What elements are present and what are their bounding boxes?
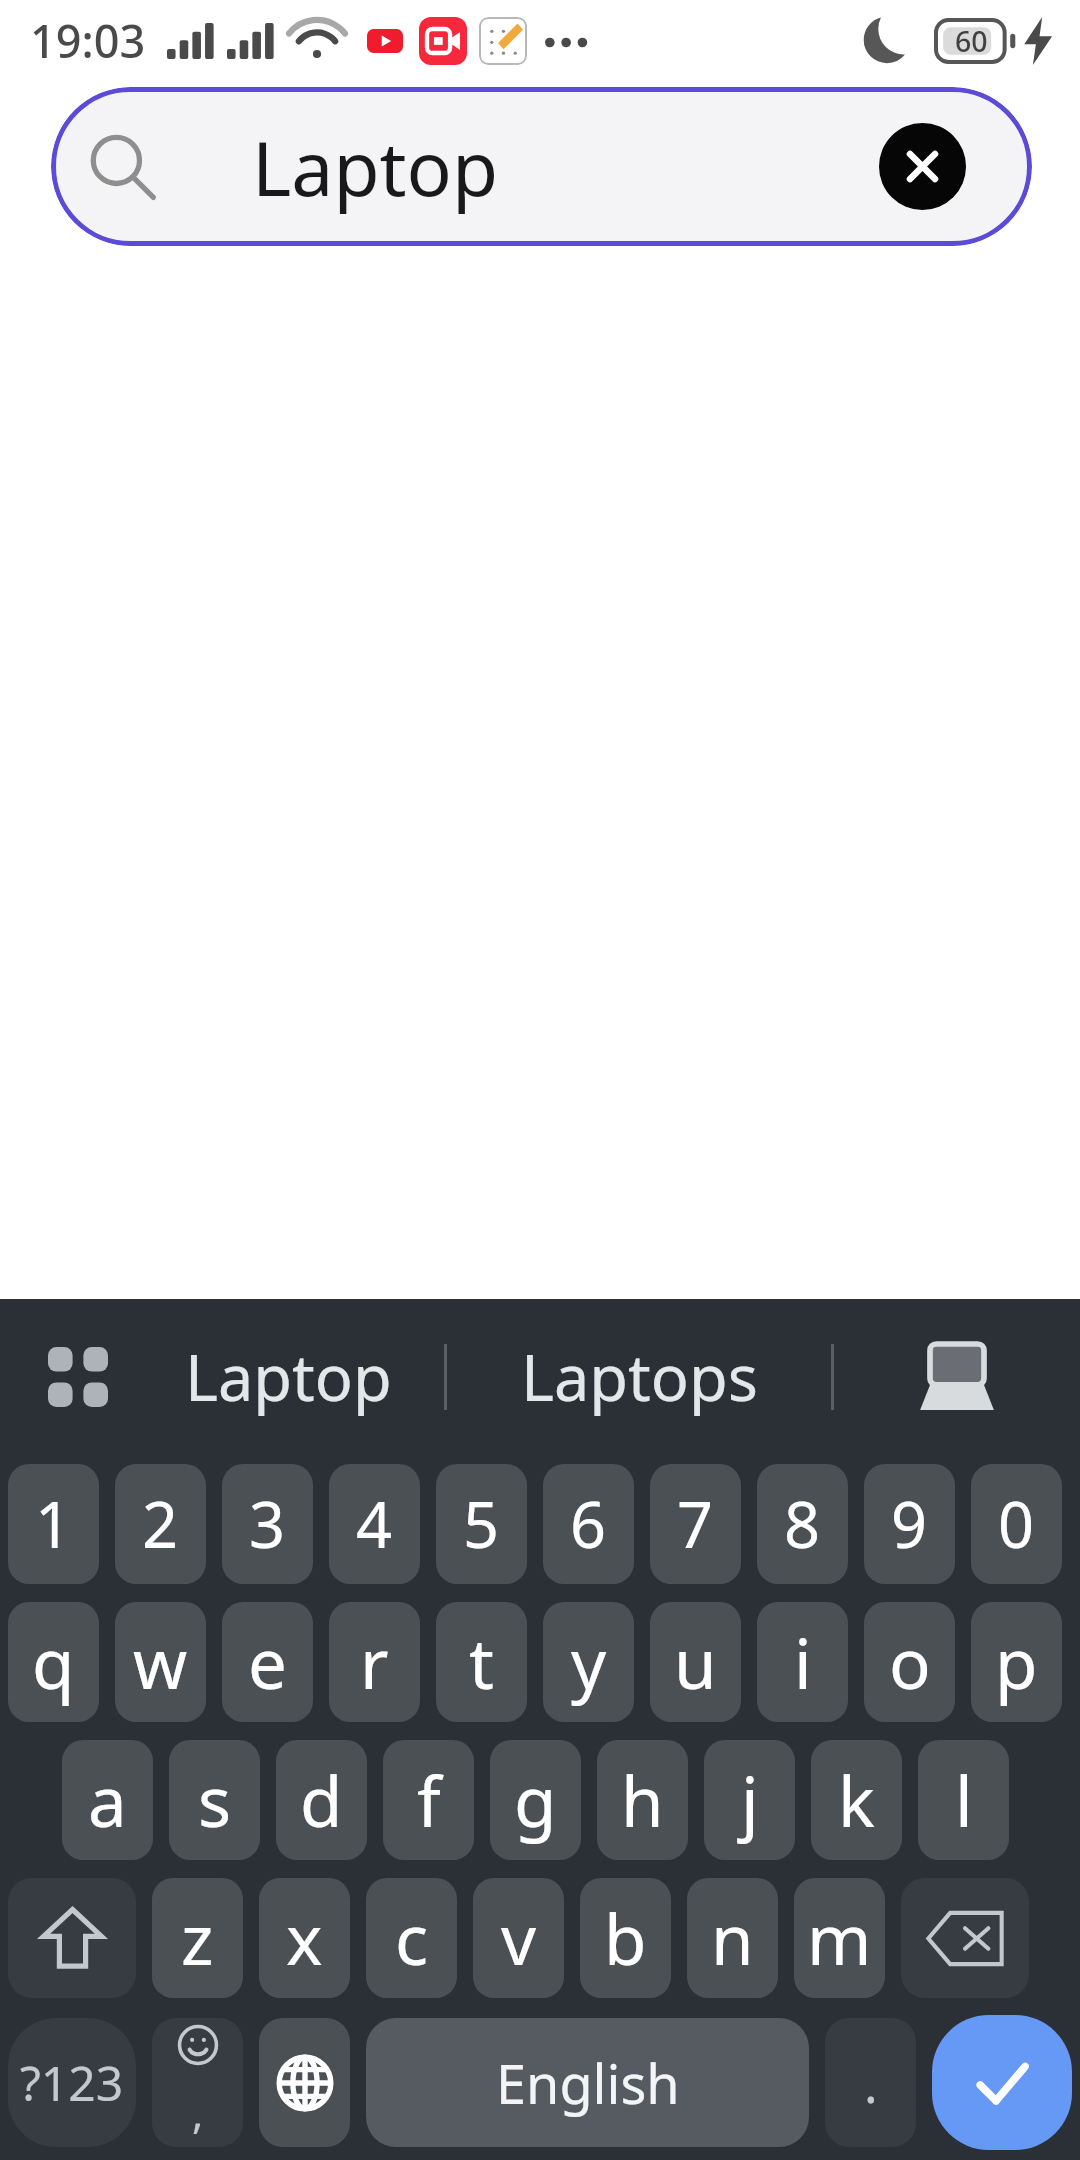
button[interactable]: 1 bbox=[8, 1464, 99, 1584]
button[interactable]: x bbox=[259, 1878, 350, 1998]
button[interactable]: Keyboard menu bbox=[24, 1323, 132, 1431]
staticText: e bbox=[248, 1615, 287, 1709]
button[interactable]: n bbox=[687, 1878, 778, 1998]
staticText: z bbox=[181, 1891, 214, 1985]
button[interactable]: e bbox=[222, 1602, 313, 1722]
staticText: y bbox=[571, 1615, 607, 1709]
staticText: m bbox=[807, 1891, 872, 1985]
staticText: x bbox=[286, 1891, 323, 1985]
staticText: h bbox=[621, 1753, 664, 1847]
staticText: q bbox=[32, 1615, 75, 1709]
button[interactable]: i bbox=[757, 1602, 848, 1722]
button[interactable]: 3 bbox=[222, 1464, 313, 1584]
button[interactable]: Shift bbox=[8, 1878, 136, 1998]
button[interactable]: t bbox=[436, 1602, 527, 1722]
staticText: n bbox=[711, 1891, 754, 1985]
staticText: j bbox=[741, 1753, 759, 1847]
staticText: l bbox=[955, 1753, 973, 1847]
button[interactable]: Laptop emoji bbox=[834, 1299, 1080, 1455]
button[interactable]: English bbox=[366, 2018, 809, 2147]
button[interactable]: c bbox=[366, 1878, 457, 1998]
button[interactable]: Backspace bbox=[901, 1878, 1029, 1998]
button[interactable]: ?123 bbox=[8, 2018, 136, 2147]
staticText: u bbox=[674, 1615, 717, 1709]
button[interactable]: 0 bbox=[971, 1464, 1062, 1584]
staticText: . bbox=[864, 2048, 878, 2117]
staticText: c bbox=[395, 1891, 429, 1985]
button[interactable]: o bbox=[864, 1602, 955, 1722]
button[interactable]: r bbox=[329, 1602, 420, 1722]
button[interactable]: u bbox=[650, 1602, 741, 1722]
button[interactable]: 5 bbox=[436, 1464, 527, 1584]
staticText: 1 bbox=[35, 1481, 72, 1567]
staticText: o bbox=[889, 1615, 931, 1709]
staticText: 3 bbox=[249, 1481, 286, 1567]
staticText: , bbox=[192, 2084, 204, 2141]
button[interactable]: d bbox=[276, 1740, 367, 1860]
button[interactable]: 2 bbox=[115, 1464, 206, 1584]
staticText: 19:03 bbox=[30, 10, 146, 71]
staticText: r bbox=[360, 1615, 389, 1709]
button[interactable]: f bbox=[383, 1740, 474, 1860]
button[interactable]: 9 bbox=[864, 1464, 955, 1584]
staticText: English bbox=[496, 2046, 680, 2120]
staticText: 6 bbox=[570, 1481, 607, 1567]
button[interactable]: h bbox=[597, 1740, 688, 1860]
button[interactable]: v bbox=[473, 1878, 564, 1998]
staticText: Laptop bbox=[185, 1334, 392, 1420]
button[interactable]: k bbox=[811, 1740, 902, 1860]
button[interactable]: Change language bbox=[259, 2018, 350, 2147]
button[interactable]: b bbox=[580, 1878, 671, 1998]
staticText: 8 bbox=[784, 1481, 821, 1567]
staticText: v bbox=[501, 1891, 537, 1985]
button[interactable]: Search bbox=[932, 2015, 1072, 2150]
button[interactable]: g bbox=[490, 1740, 581, 1860]
staticText: Laptops bbox=[521, 1334, 758, 1420]
button[interactable]: s bbox=[169, 1740, 260, 1860]
button[interactable]: j bbox=[704, 1740, 795, 1860]
staticText: ?123 bbox=[20, 2050, 124, 2115]
staticText: 5 bbox=[463, 1481, 500, 1567]
button[interactable]: . bbox=[825, 2018, 916, 2147]
button[interactable]: Laptops bbox=[447, 1299, 831, 1455]
staticText: 9 bbox=[891, 1481, 928, 1567]
staticText: b bbox=[604, 1891, 647, 1985]
button[interactable]: 4 bbox=[329, 1464, 420, 1584]
staticText: 2 bbox=[142, 1481, 179, 1567]
staticText: i bbox=[794, 1615, 812, 1709]
staticText: k bbox=[838, 1753, 875, 1847]
button[interactable]: w bbox=[115, 1602, 206, 1722]
staticText: g bbox=[514, 1753, 557, 1847]
button[interactable]: q bbox=[8, 1602, 99, 1722]
button[interactable]: 8 bbox=[757, 1464, 848, 1584]
button[interactable]: l bbox=[918, 1740, 1009, 1860]
button[interactable]: 6 bbox=[543, 1464, 634, 1584]
button[interactable]: Emoji and comma bbox=[152, 2018, 243, 2147]
button[interactable]: Clear search bbox=[879, 123, 966, 210]
button[interactable]: a bbox=[62, 1740, 153, 1860]
staticText: 7 bbox=[677, 1481, 714, 1567]
button[interactable]: m bbox=[794, 1878, 885, 1998]
staticText: Laptop bbox=[252, 116, 499, 218]
button[interactable]: Laptop bbox=[132, 1299, 444, 1455]
staticText: p bbox=[995, 1615, 1038, 1709]
staticText: 4 bbox=[356, 1481, 393, 1567]
button[interactable]: p bbox=[971, 1602, 1062, 1722]
button[interactable]: y bbox=[543, 1602, 634, 1722]
staticText: d bbox=[300, 1753, 343, 1847]
staticText: a bbox=[88, 1753, 127, 1847]
button[interactable]: z bbox=[152, 1878, 243, 1998]
button[interactable]: Laptop bbox=[51, 87, 1032, 246]
staticText: w bbox=[133, 1615, 188, 1709]
staticText: f bbox=[417, 1753, 441, 1847]
staticText: 60 bbox=[955, 22, 988, 61]
staticText: t bbox=[469, 1615, 494, 1709]
button[interactable]: 7 bbox=[650, 1464, 741, 1584]
staticText: 0 bbox=[998, 1481, 1035, 1567]
staticText: s bbox=[198, 1753, 232, 1847]
